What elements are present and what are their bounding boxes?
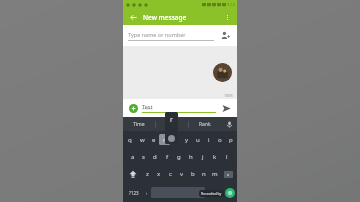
- staticText: m: [212, 170, 218, 178]
- staticText: Core: [167, 121, 178, 128]
- staticText: v: [180, 170, 184, 178]
- staticText: q: [128, 136, 132, 144]
- button[interactable]: x: [153, 165, 165, 183]
- button[interactable]: y: [181, 131, 192, 148]
- staticText: i: [208, 136, 210, 144]
- staticText: p: [229, 136, 233, 144]
- staticText: j: [202, 153, 204, 161]
- staticText: u: [196, 136, 200, 144]
- staticText: e: [152, 136, 156, 144]
- button[interactable]: ?123: [125, 183, 142, 202]
- staticText: 100%: [224, 93, 233, 98]
- button[interactable]: b: [187, 165, 198, 183]
- staticText: New message: [143, 13, 187, 22]
- staticText: f: [166, 153, 169, 161]
- button[interactable]: i: [203, 131, 214, 148]
- button[interactable]: m: [209, 165, 220, 183]
- staticText: ?123: [129, 190, 139, 196]
- staticText: x: [157, 170, 161, 178]
- staticText: c: [169, 170, 172, 178]
- button[interactable]: l: [221, 148, 233, 165]
- staticText: n: [202, 170, 206, 178]
- staticText: Rank: [199, 121, 211, 128]
- staticText: Recorded by: [201, 191, 222, 196]
- button[interactable]: Back: [127, 11, 139, 23]
- button[interactable]: o: [214, 131, 225, 148]
- button[interactable]: z: [141, 165, 153, 183]
- button[interactable]: Rank: [189, 117, 221, 131]
- staticText: h: [189, 153, 193, 161]
- staticText: g: [177, 153, 181, 161]
- staticText: d: [153, 153, 157, 161]
- staticText: k: [213, 153, 217, 161]
- button[interactable]: ,: [142, 183, 151, 202]
- staticText: y: [185, 136, 189, 144]
- staticText: Type name or number: [128, 31, 186, 38]
- staticText: z: [146, 170, 149, 178]
- button[interactable]: u: [192, 131, 203, 148]
- button[interactable]: c: [165, 165, 176, 183]
- button[interactable]: h: [185, 148, 197, 165]
- button[interactable]: n: [198, 165, 209, 183]
- staticText: l: [226, 153, 228, 161]
- button[interactable]: f: [161, 148, 173, 165]
- button[interactable]: p: [225, 131, 236, 148]
- staticText: r: [163, 136, 166, 144]
- button[interactable]: Backspace: [220, 165, 236, 183]
- button[interactable]: t: [170, 131, 181, 148]
- button[interactable]: Test: [142, 103, 216, 113]
- button[interactable]: a: [127, 148, 138, 165]
- staticText: s: [142, 153, 145, 161]
- button[interactable]: r: [159, 131, 170, 148]
- button[interactable]: k: [209, 148, 221, 165]
- staticText: a: [131, 153, 135, 161]
- button[interactable]: Core: [156, 117, 188, 131]
- button[interactable]: d: [149, 148, 161, 165]
- button[interactable]: g: [173, 148, 185, 165]
- button[interactable]: More options: [221, 11, 233, 23]
- button[interactable]: s: [138, 148, 149, 165]
- button[interactable]: Space: [151, 187, 205, 198]
- button[interactable]: w: [136, 131, 148, 148]
- button[interactable]: Attached image: [213, 63, 232, 82]
- button[interactable]: q: [124, 131, 136, 148]
- staticText: Time: [133, 121, 145, 128]
- staticText: 9:24: [227, 2, 235, 7]
- staticText: ,: [146, 189, 148, 196]
- staticText: b: [191, 170, 195, 178]
- staticText: t: [174, 136, 177, 144]
- staticText: Test: [142, 103, 153, 110]
- staticText: r: [170, 115, 173, 125]
- button[interactable]: Add contact: [219, 29, 232, 42]
- staticText: x: [227, 172, 230, 177]
- button[interactable]: Type name or number: [128, 31, 214, 41]
- button[interactable]: Voice input: [221, 117, 237, 131]
- button[interactable]: Shift: [124, 165, 141, 183]
- button[interactable]: Send: [220, 102, 233, 115]
- button[interactable]: Time: [123, 117, 155, 131]
- staticText: w: [140, 136, 145, 144]
- button[interactable]: v: [176, 165, 187, 183]
- button[interactable]: e: [148, 131, 159, 148]
- button[interactable]: Add attachment: [127, 102, 139, 114]
- button[interactable]: j: [197, 148, 209, 165]
- staticText: o: [218, 136, 222, 144]
